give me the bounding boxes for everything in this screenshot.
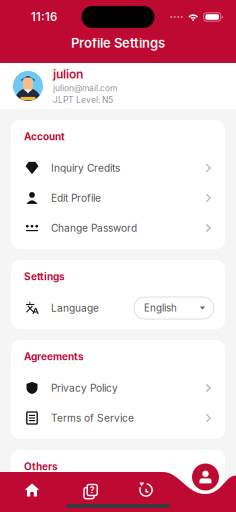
button[interactable]: Profile (192, 463, 219, 490)
staticText: Language (51, 302, 99, 314)
staticText: 11:16 (31, 10, 57, 24)
staticText: ? (90, 485, 95, 495)
staticText: Account (24, 130, 65, 143)
staticText: English (144, 302, 177, 314)
button[interactable]: Home (3, 477, 60, 503)
staticText: JLPT Level: N5 (53, 95, 113, 105)
staticText: julion@mail.com (53, 83, 117, 93)
staticText: Others (24, 460, 58, 473)
button[interactable]: Quiz (60, 477, 117, 503)
staticText: julion (53, 67, 83, 81)
staticText: Agreements (24, 350, 84, 363)
staticText: Change Password (51, 222, 137, 234)
staticText: Inquiry Credits (51, 162, 120, 174)
staticText: Edit Profile (51, 192, 101, 204)
staticText: Terms of Service (51, 412, 134, 424)
staticText: Privacy Policy (51, 382, 118, 394)
button[interactable]: Terms of Service (11, 403, 225, 433)
button[interactable]: History (117, 477, 174, 503)
button[interactable]: Change Password (11, 213, 225, 243)
staticText: Profile Settings (71, 35, 165, 51)
staticText: Settings (24, 270, 65, 283)
button[interactable]: Privacy Policy (11, 373, 225, 403)
button[interactable]: English (134, 297, 214, 319)
button[interactable]: Inquiry Credits (11, 153, 225, 183)
button[interactable]: Edit Profile (11, 183, 225, 213)
